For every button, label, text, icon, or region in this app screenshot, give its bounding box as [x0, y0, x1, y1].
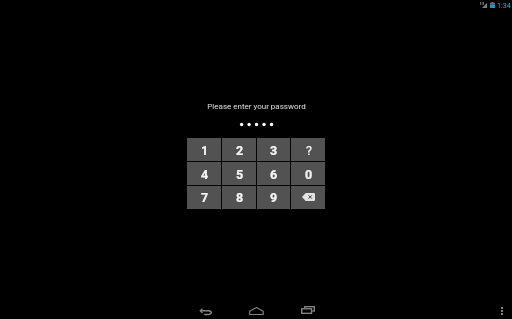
- staticText: 0: [305, 167, 313, 182]
- staticText: 5: [236, 167, 244, 182]
- button[interactable]: 6: [256, 162, 291, 186]
- button[interactable]: 1: [187, 138, 222, 162]
- button[interactable]: 9: [256, 185, 291, 209]
- staticText: 7: [201, 190, 209, 205]
- staticText: 4: [201, 167, 209, 182]
- button[interactable]: 3: [256, 138, 291, 162]
- button[interactable]: 8: [222, 185, 257, 209]
- button[interactable]: 4: [187, 162, 222, 186]
- staticText: 1: [201, 143, 209, 158]
- button[interactable]: Delete: [291, 185, 326, 209]
- button[interactable]: ?: [291, 138, 326, 162]
- button[interactable]: 7: [187, 185, 222, 209]
- button[interactable]: Home: [237, 296, 275, 318]
- button[interactable]: 0: [291, 162, 326, 186]
- button[interactable]: Back: [186, 296, 224, 318]
- button[interactable]: 2: [222, 138, 257, 162]
- staticText: 1:34: [497, 1, 511, 9]
- button[interactable]: Recent apps: [289, 296, 327, 318]
- staticText: ?: [306, 143, 312, 158]
- staticText: 9: [270, 190, 278, 205]
- staticText: Please enter your password: [207, 102, 306, 111]
- other: Delete: [302, 193, 315, 201]
- staticText: 2: [236, 143, 244, 158]
- button[interactable]: 5: [222, 162, 257, 186]
- button[interactable]: More options: [492, 296, 512, 318]
- staticText: 6: [270, 167, 278, 182]
- staticText: 8: [236, 190, 244, 205]
- staticText: 3: [270, 143, 278, 158]
